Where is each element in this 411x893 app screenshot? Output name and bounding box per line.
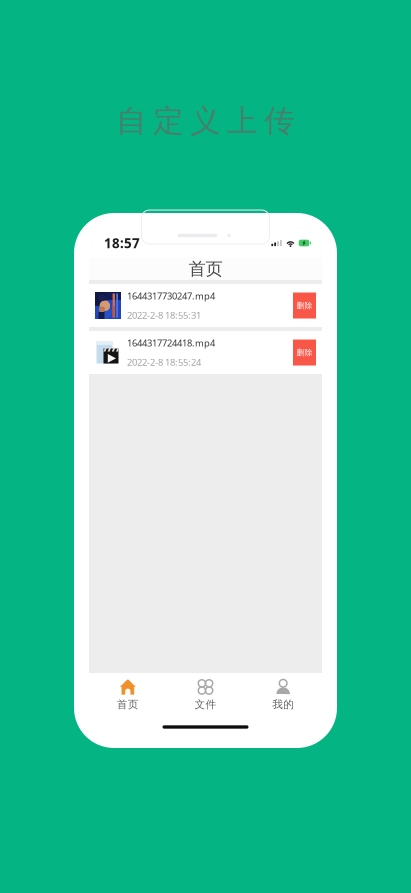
staticText: 2022-2-8 18:55:31 (127, 309, 201, 321)
staticText: 2022-2-8 18:55:24 (127, 356, 201, 368)
staticText: 删除 (296, 301, 312, 310)
staticText: 删除 (296, 348, 312, 357)
staticText: 自定义上传 (116, 102, 295, 140)
staticText: 18:57 (104, 234, 140, 252)
staticText: 文件 (194, 698, 216, 711)
staticText: 1644317730247.mp4 (127, 290, 215, 302)
staticText: 首页 (188, 258, 222, 280)
staticText: 1644317724418.mp4 (127, 337, 215, 349)
button[interactable]: 删除 (293, 292, 316, 318)
staticText: 我的 (272, 698, 294, 711)
staticText: 首页 (117, 698, 139, 711)
button[interactable]: 首页 (89, 673, 167, 717)
button[interactable]: 删除 (293, 339, 316, 365)
button[interactable]: 我的 (244, 673, 322, 717)
button[interactable]: 文件 (167, 673, 244, 717)
